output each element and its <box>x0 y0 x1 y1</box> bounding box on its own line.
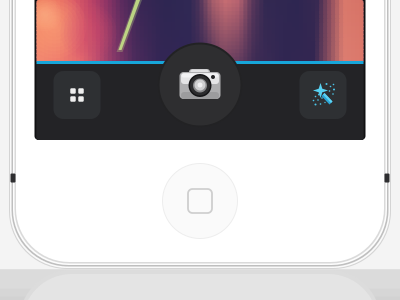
button[interactable]: Effects <box>299 71 346 119</box>
button[interactable]: Home <box>162 163 238 239</box>
button[interactable]: Shutter <box>157 42 242 127</box>
button[interactable]: Grid <box>53 71 100 119</box>
